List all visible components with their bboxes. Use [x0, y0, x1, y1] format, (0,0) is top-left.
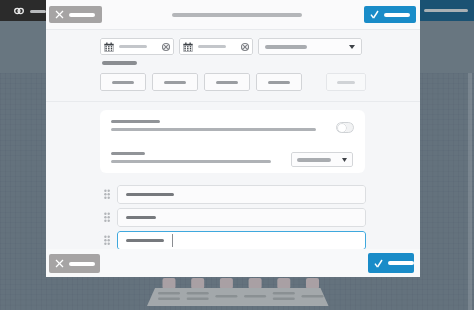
button[interactable]: Option [326, 73, 366, 91]
button[interactable]: Option [256, 73, 302, 91]
other: Clear [162, 43, 170, 51]
button[interactable]: Dropdown [258, 38, 362, 55]
button[interactable]: Cancel [49, 254, 100, 273]
button[interactable]: Date [100, 38, 174, 55]
other: Menu [14, 6, 24, 16]
button[interactable]: Close [49, 6, 102, 23]
other: Drag handle [104, 189, 111, 201]
button[interactable]: Date [179, 38, 253, 55]
button[interactable]: Save [364, 6, 416, 23]
button[interactable]: Option [152, 73, 198, 91]
other: Drag handle [104, 212, 111, 224]
button[interactable]: Text field [117, 208, 366, 227]
button[interactable]: Option [100, 73, 146, 91]
button[interactable]: Dropdown [291, 152, 353, 167]
button[interactable]: Text field [117, 231, 366, 250]
button[interactable]: Toggle [336, 122, 354, 133]
button[interactable]: Confirm [368, 253, 414, 273]
button[interactable]: Text field [117, 185, 366, 204]
button[interactable]: Option [204, 73, 250, 91]
other: Drag handle [104, 235, 111, 247]
other: Clear [241, 43, 249, 51]
